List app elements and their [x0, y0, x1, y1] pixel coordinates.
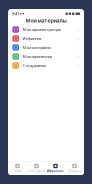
button[interactable]: Лента [8, 163, 27, 174]
staticText: › [77, 44, 79, 51]
staticText: Избранное [47, 169, 64, 173]
staticText: Сообщения [28, 169, 45, 173]
button[interactable]: Профиль [65, 163, 84, 174]
staticText: › [77, 26, 79, 33]
staticText: Мои материалы [22, 45, 51, 50]
button[interactable]: Избранное [8, 34, 84, 43]
staticText: 9:41 [12, 11, 19, 16]
button[interactable]: Сотрудникам [8, 61, 84, 70]
staticText: Мои приложения [22, 54, 52, 59]
staticText: Избранное [22, 36, 41, 41]
staticText: › [77, 35, 79, 42]
staticText: Мои администраторы [22, 27, 61, 32]
staticText: › [77, 62, 79, 69]
staticText: Лента [14, 169, 21, 173]
staticText: Сотрудникам [22, 63, 46, 68]
button[interactable]: Сообщения [27, 163, 46, 174]
staticText: Профиль [68, 169, 81, 173]
staticText: › [77, 53, 79, 60]
button[interactable]: Избранное [46, 163, 65, 174]
button[interactable]: Мои материалы [8, 43, 84, 52]
button[interactable]: Мои приложения [8, 52, 84, 61]
button[interactable]: Мои администраторы [8, 25, 84, 34]
staticText: Мои материалы [25, 17, 66, 24]
